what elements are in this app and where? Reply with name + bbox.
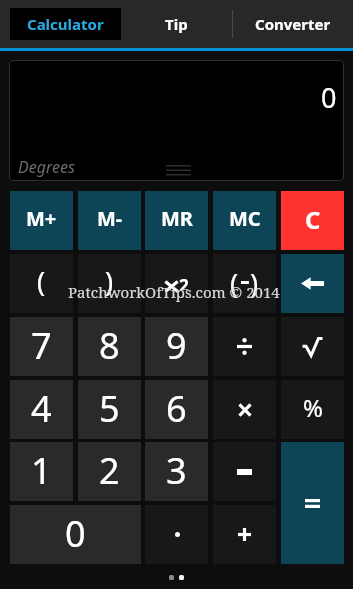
button[interactable]: M+ — [10, 191, 73, 250]
button[interactable]: Calculator — [10, 8, 121, 40]
staticText: ( — [37, 263, 46, 300]
button[interactable]: Divide — [213, 317, 276, 376]
button[interactable]: Backspace — [281, 254, 344, 313]
staticText: Tip — [165, 14, 188, 34]
staticText: 3 — [166, 446, 187, 495]
button[interactable]: ( — [213, 254, 276, 313]
button[interactable]: 0 — [10, 505, 141, 564]
staticText: M+ — [26, 205, 57, 232]
other: Equals — [305, 499, 320, 508]
staticText: ) — [105, 263, 114, 300]
staticText: 9 — [166, 321, 187, 370]
button[interactable]: 7 — [10, 317, 73, 376]
button[interactable]: Equals — [281, 442, 344, 564]
staticText: MR — [161, 205, 193, 232]
staticText: 0 — [65, 509, 86, 558]
other: Plus — [238, 528, 251, 541]
button[interactable]: 9 — [145, 317, 208, 376]
staticText: 6 — [166, 384, 187, 433]
staticText: Calculator — [27, 14, 104, 34]
button[interactable]: Converter — [233, 0, 353, 48]
button[interactable]: 2 — [78, 442, 141, 501]
other: Multiply — [239, 404, 251, 416]
staticText: % — [303, 391, 323, 424]
button[interactable]: Decimal point — [145, 505, 208, 564]
staticText: 2 — [99, 446, 120, 495]
button[interactable]: 1 — [10, 442, 73, 501]
button[interactable]: 5 — [78, 380, 141, 439]
staticText: 4 — [31, 384, 52, 433]
staticText: ( — [230, 265, 239, 302]
button[interactable]: M- — [78, 191, 141, 250]
button[interactable]: MC — [213, 191, 276, 250]
button[interactable]: Multiply — [213, 380, 276, 439]
button[interactable]: ( — [10, 254, 73, 313]
staticText: 5 — [99, 384, 120, 433]
other: Decimal point — [175, 532, 180, 537]
button[interactable]: C — [281, 191, 344, 250]
button[interactable]: 8 — [78, 317, 141, 376]
other: Square root — [301, 337, 324, 357]
button[interactable]: Minus — [213, 442, 276, 501]
staticText: Degrees — [18, 156, 75, 178]
staticText: M- — [97, 205, 123, 232]
staticText: 2 — [179, 274, 189, 290]
staticText: 7 — [31, 321, 52, 370]
staticText: PatchworkOfTips.com © 2014 — [68, 282, 280, 302]
button[interactable]: % — [281, 380, 344, 439]
button[interactable]: ) — [78, 254, 141, 313]
button[interactable]: Tip — [121, 0, 232, 48]
button[interactable]: 6 — [145, 380, 208, 439]
other: Divide — [237, 338, 252, 355]
staticText: 0 — [321, 79, 337, 116]
other: Backspace — [301, 276, 324, 291]
button[interactable]: Options — [166, 165, 191, 176]
button[interactable]: MR — [145, 191, 208, 250]
staticText: ) — [250, 265, 259, 302]
button[interactable]: Square root — [281, 317, 344, 376]
button[interactable]: 3 — [145, 442, 208, 501]
staticText: 8 — [99, 321, 120, 370]
button[interactable]: 4 — [10, 380, 73, 439]
button[interactable]: 2 — [145, 254, 208, 313]
staticText: MC — [229, 205, 261, 232]
staticText: Converter — [255, 14, 331, 34]
staticText: C — [305, 203, 321, 236]
button[interactable]: Plus — [213, 505, 276, 564]
staticText: 1 — [31, 446, 52, 495]
